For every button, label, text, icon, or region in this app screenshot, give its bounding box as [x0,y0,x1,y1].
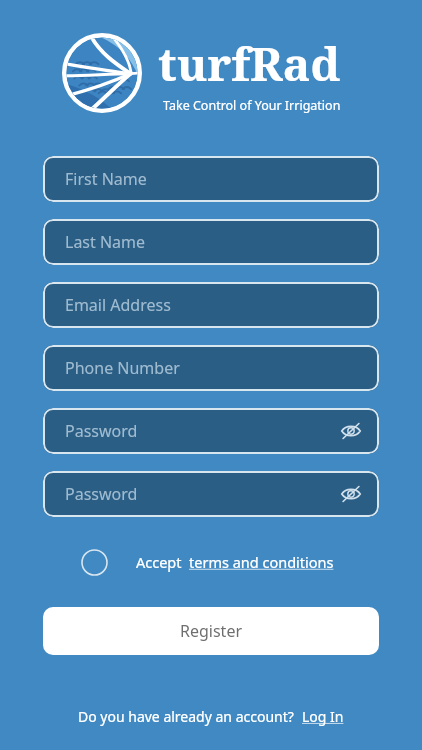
staticText: Password [65,483,331,505]
staticText: Do you have already an account? [78,707,294,726]
button[interactable]: Show password [331,411,371,451]
button[interactable]: Password [43,408,379,454]
button[interactable]: terms and conditions [189,552,334,572]
button[interactable]: Register [43,607,379,655]
staticText: terms and conditions [189,552,334,572]
staticText: Accept [136,552,182,572]
staticText: Phone Number [65,357,357,379]
staticText: Last Name [65,231,357,253]
button[interactable]: First Name [43,156,379,202]
staticText: Email Address [65,294,357,316]
staticText: Password [65,420,331,442]
staticText: turfRad [158,32,341,95]
staticText: Take Control of Your Irrigation [163,97,341,114]
button[interactable]: Last Name [43,219,379,265]
button[interactable]: Log In [302,707,344,726]
staticText: Log In [302,707,344,726]
button[interactable]: Phone Number [43,345,379,391]
button[interactable]: Password [43,471,379,517]
button[interactable]: Show password [331,474,371,514]
button[interactable]: Email Address [43,282,379,328]
staticText: Register [180,620,243,642]
staticText: First Name [65,168,357,190]
button[interactable]: Accept terms checkbox [77,545,111,579]
